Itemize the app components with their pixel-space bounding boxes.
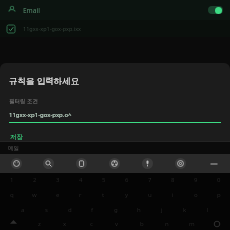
staticText: q	[10, 191, 14, 199]
staticText: Email	[23, 6, 41, 15]
staticText: b	[140, 220, 144, 228]
staticText: 9	[194, 176, 198, 184]
button[interactable]: Shift	[0, 217, 26, 230]
staticText: t	[102, 191, 105, 199]
staticText: 0	[217, 176, 221, 184]
button[interactable]: 11gxx-xp1-gox-pxp.ixx	[0, 20, 230, 37]
button[interactable]: 저장	[9, 132, 24, 141]
staticText: m	[189, 220, 195, 228]
staticText: c	[90, 220, 93, 228]
staticText: 11gxx-xp1-gox-pxp.o^	[9, 111, 72, 119]
staticText: w	[32, 191, 37, 199]
staticText: y	[125, 191, 129, 199]
staticText: 메일	[8, 145, 19, 152]
staticText: 2	[33, 176, 37, 184]
staticText: i	[172, 191, 174, 199]
staticText: n	[165, 220, 169, 228]
staticText: o	[194, 191, 198, 199]
staticText: d	[68, 206, 72, 214]
button[interactable]: Theme	[98, 154, 131, 173]
staticText: 11gxx-xp1-gox-pxp.ixx	[23, 25, 82, 32]
staticText: u	[148, 191, 152, 199]
staticText: s	[45, 206, 48, 214]
staticText: 5	[102, 176, 106, 184]
staticText: k	[183, 206, 187, 214]
button[interactable]: Email	[0, 0, 230, 20]
staticText: h	[137, 206, 141, 214]
staticText: 필터링 조건	[9, 97, 38, 105]
staticText: v	[115, 220, 119, 228]
staticText: x	[63, 220, 67, 228]
button[interactable]: Backspace	[204, 217, 230, 230]
button[interactable]: Search	[32, 154, 65, 173]
staticText: e	[56, 191, 60, 199]
button[interactable]: More	[197, 154, 230, 173]
staticText: 6	[125, 176, 129, 184]
staticText: p	[217, 191, 221, 199]
button[interactable]: Clipboard	[65, 154, 98, 173]
button[interactable]: Emoji	[0, 154, 32, 173]
button[interactable]: Voice input	[131, 154, 164, 173]
staticText: r	[79, 191, 82, 199]
staticText: 7	[148, 176, 152, 184]
staticText: 1	[10, 176, 14, 184]
staticText: l	[207, 206, 209, 214]
staticText: a	[21, 206, 25, 214]
staticText: 8	[171, 176, 175, 184]
staticText: g	[114, 206, 118, 214]
staticText: z	[38, 220, 41, 228]
staticText: j	[161, 206, 163, 214]
staticText: 3	[56, 176, 60, 184]
staticText: 저장	[10, 133, 23, 140]
staticText: 규칙을 입력하세요	[9, 75, 80, 87]
staticText: f	[91, 206, 94, 214]
button[interactable]: Toggle	[208, 6, 223, 14]
staticText: 4	[79, 176, 83, 184]
button[interactable]: Settings	[164, 154, 197, 173]
